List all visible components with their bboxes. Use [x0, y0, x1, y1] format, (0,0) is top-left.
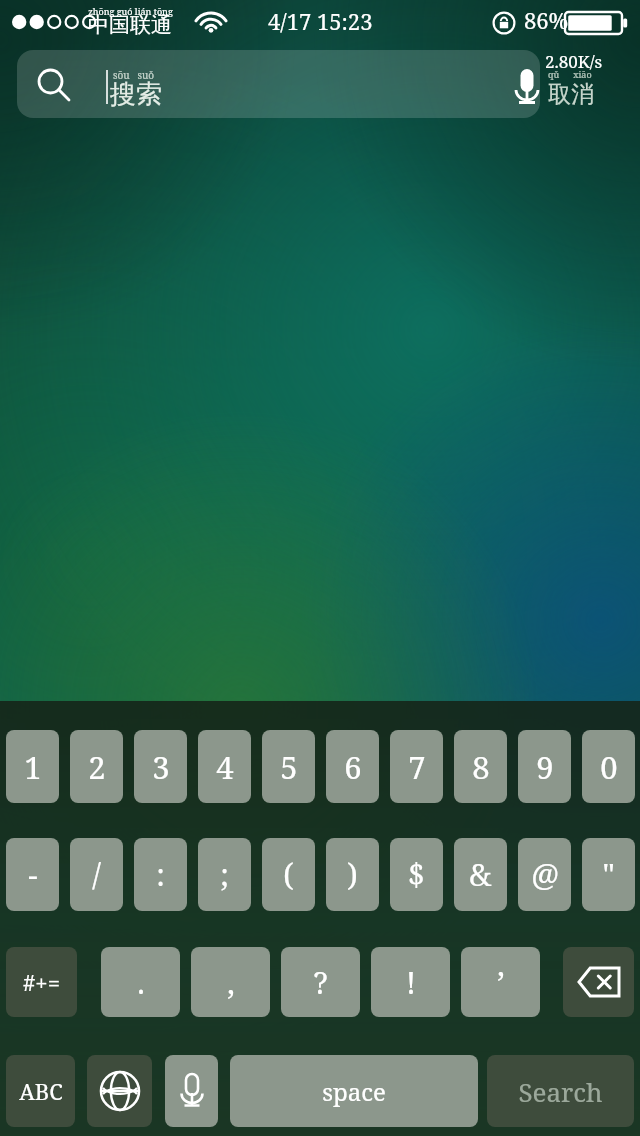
staticText: ": [602, 854, 615, 895]
staticText: 搜索: [110, 78, 162, 111]
staticText: #+=: [23, 967, 60, 997]
staticText: /: [92, 854, 101, 895]
button[interactable]: 1: [6, 730, 59, 803]
staticText: ): [347, 854, 358, 895]
button[interactable]: /: [70, 838, 123, 911]
button[interactable]: 4: [198, 730, 251, 803]
staticText: ,: [227, 962, 235, 1003]
button[interactable]: :: [134, 838, 187, 911]
staticText: 中国联通: [88, 12, 172, 38]
staticText: Search: [518, 1074, 603, 1109]
staticText: space: [322, 1075, 386, 1108]
staticText: 2: [88, 746, 106, 788]
staticText: 6: [344, 746, 362, 788]
staticText: 9: [536, 746, 554, 788]
staticText: 4: [216, 746, 234, 788]
button[interactable]: sōu suǒ: [17, 50, 540, 118]
button[interactable]: @: [518, 838, 571, 911]
button[interactable]: ": [582, 838, 635, 911]
staticText: ’: [497, 962, 505, 1003]
button[interactable]: Search: [487, 1055, 634, 1127]
staticText: 5: [280, 746, 298, 788]
staticText: ?: [313, 962, 328, 1003]
staticText: -: [28, 854, 38, 895]
button[interactable]: ;: [198, 838, 251, 911]
staticText: ABC: [19, 1076, 63, 1106]
staticText: @: [531, 854, 559, 895]
button[interactable]: qǔ xiāo: [548, 68, 634, 116]
staticText: 取消: [548, 80, 594, 109]
button[interactable]: 5: [262, 730, 315, 803]
button[interactable]: ’: [461, 947, 540, 1017]
staticText: &: [469, 854, 492, 895]
staticText: :: [156, 854, 165, 895]
button[interactable]: 3: [134, 730, 187, 803]
button[interactable]: 7: [390, 730, 443, 803]
button[interactable]: ?: [281, 947, 360, 1017]
button[interactable]: 8: [454, 730, 507, 803]
button[interactable]: &: [454, 838, 507, 911]
staticText: ;: [220, 854, 229, 895]
button[interactable]: 9: [518, 730, 571, 803]
button[interactable]: Backspace: [563, 947, 634, 1017]
staticText: 86%: [524, 5, 569, 35]
button[interactable]: .: [101, 947, 180, 1017]
button[interactable]: Voice input: [165, 1055, 218, 1127]
button[interactable]: ,: [191, 947, 270, 1017]
button[interactable]: ): [326, 838, 379, 911]
staticText: $: [408, 854, 425, 895]
button[interactable]: $: [390, 838, 443, 911]
button[interactable]: -: [6, 838, 59, 911]
staticText: !: [406, 962, 416, 1003]
button[interactable]: Voice search: [503, 62, 540, 106]
staticText: 3: [152, 746, 170, 788]
staticText: 7: [408, 746, 426, 788]
staticText: .: [137, 962, 145, 1003]
staticText: qǔ xiāo: [548, 68, 592, 80]
staticText: (: [283, 854, 294, 895]
button[interactable]: #+=: [6, 947, 77, 1017]
staticText: 2.80K/s: [545, 50, 603, 73]
staticText: 8: [472, 746, 490, 788]
button[interactable]: ABC: [6, 1055, 75, 1127]
button[interactable]: space: [230, 1055, 478, 1127]
button[interactable]: 2: [70, 730, 123, 803]
button[interactable]: 6: [326, 730, 379, 803]
button[interactable]: (: [262, 838, 315, 911]
staticText: 0: [600, 746, 618, 788]
staticText: 1: [24, 746, 42, 788]
button[interactable]: !: [371, 947, 450, 1017]
button[interactable]: 0: [582, 730, 635, 803]
staticText: 4/17 15:23: [268, 6, 373, 36]
staticText: sōu suǒ: [113, 68, 155, 82]
button[interactable]: Change language: [87, 1055, 152, 1127]
staticText: zhōng guó lián tōng: [88, 5, 173, 17]
